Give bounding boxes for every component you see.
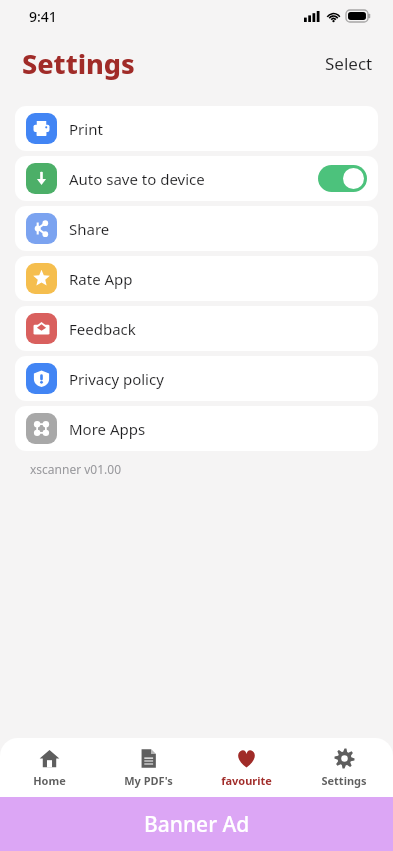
button[interactable]: Rate App — [15, 256, 378, 301]
button[interactable]: Settings — [295, 738, 393, 797]
button[interactable]: Print — [15, 106, 378, 151]
staticText: Rate App — [69, 269, 133, 289]
button[interactable]: Select — [317, 46, 381, 81]
staticText: 9:41 — [29, 7, 57, 26]
staticText: Privacy policy — [69, 369, 164, 389]
button[interactable]: More Apps — [15, 406, 378, 451]
button[interactable]: Auto save toggle — [318, 165, 367, 192]
staticText: Share — [69, 219, 110, 239]
staticText: favourite — [221, 773, 272, 788]
button[interactable]: Share — [15, 206, 378, 251]
staticText: More Apps — [69, 419, 146, 439]
staticText: My PDF's — [124, 773, 173, 788]
button[interactable]: My PDF's — [99, 738, 197, 797]
button[interactable]: favourite — [197, 738, 295, 797]
staticText: Settings — [22, 45, 135, 82]
staticText: Print — [69, 119, 103, 139]
staticText: Auto save to device — [69, 169, 205, 189]
button[interactable]: Auto save to device — [15, 156, 378, 201]
staticText: xscanner v01.00 — [30, 461, 122, 477]
button[interactable]: Privacy policy — [15, 356, 378, 401]
button[interactable]: Feedback — [15, 306, 378, 351]
staticText: Home — [33, 773, 66, 788]
button[interactable]: Banner Ad — [0, 797, 393, 851]
staticText: Banner Ad — [144, 810, 250, 839]
button[interactable]: Home — [0, 738, 99, 797]
staticText: Feedback — [69, 319, 136, 339]
staticText: Settings — [321, 773, 367, 788]
staticText: Select — [325, 52, 373, 75]
